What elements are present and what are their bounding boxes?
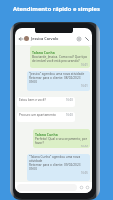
staticText: Boa tarde, Jessica. Como vai? Que tipo [32, 55, 88, 59]
staticText: Perfeito! Qual o seu orçamento, por [35, 137, 87, 141]
button[interactable]: Talana Cunha [30, 46, 90, 68]
staticText: Atendimento rápido e simples [13, 5, 100, 13]
staticText: 16:03 [66, 113, 73, 117]
staticText: 16:01 [81, 84, 88, 88]
staticText: Retornar para o cliente: 09/02/2023 [29, 163, 81, 167]
staticText: atividade [29, 159, 43, 163]
button[interactable]: Call [84, 36, 90, 42]
button[interactable]: Video call [76, 36, 82, 42]
staticText: Retornar para o cliente: 08/02/2023 [29, 76, 81, 80]
button[interactable]: Estou bem e você? [17, 97, 75, 107]
button[interactable]: Send [85, 185, 90, 190]
staticText: favor? [35, 141, 44, 145]
button[interactable]: "Jessica" agendou uma nova atividade [27, 71, 90, 91]
staticText: 09:00 [29, 80, 37, 84]
staticText: 09:00 [29, 167, 37, 171]
staticText: 16:03 [66, 98, 73, 102]
staticText: "Jessica" agendou uma nova atividade [29, 72, 85, 76]
button[interactable]: Emoji [79, 185, 84, 190]
staticText: Talana Cunha [35, 132, 58, 137]
staticText: 16:01 [81, 63, 88, 67]
staticText: Talana Cunha [32, 50, 55, 55]
staticText: "Talana Cunha" agendou uma nova [29, 155, 81, 159]
staticText: 16:04 [81, 145, 88, 147]
button[interactable]: Procuro um apartamento [17, 112, 75, 122]
staticText: Procuro um apartamento [19, 113, 56, 117]
button[interactable]: "Talana Cunha" agendou uma nova [27, 154, 90, 181]
staticText: Jessica Carvalo [31, 36, 59, 41]
staticText: 16:05 [81, 171, 88, 175]
button[interactable]: Back [17, 35, 24, 42]
staticText: Estou bem e você? [19, 98, 46, 102]
staticText: de imóvel você está procurando? [32, 59, 80, 63]
button[interactable]: Talana Cunha [33, 129, 90, 148]
